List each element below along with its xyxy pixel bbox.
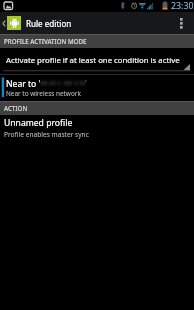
staticText: Unnamed profile (4, 117, 73, 129)
button[interactable]: Activation mode (0, 48, 194, 74)
button[interactable]: Navigate up (0, 12, 7, 34)
staticText: PROFILE ACTIVATION MODE (4, 37, 87, 45)
button[interactable]: More options (174, 12, 188, 34)
staticText: Activate profile if at least one conditi… (6, 55, 180, 66)
staticText: Near to ' (6, 78, 41, 90)
staticText: Rule edition (26, 18, 72, 29)
staticText: Profile enables master sync (4, 130, 89, 139)
staticText: ' (85, 78, 87, 90)
button[interactable]: Near to ' (0, 74, 194, 101)
button[interactable]: Unnamed profile (0, 115, 194, 141)
staticText: ACTION (4, 104, 28, 112)
staticText: 23:30 (171, 0, 194, 12)
staticText: Near to wireless network (6, 89, 81, 98)
